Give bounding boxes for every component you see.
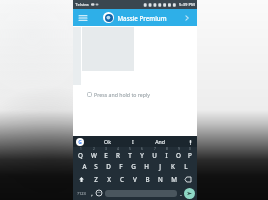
button[interactable]: X — [102, 173, 115, 186]
button[interactable]: H — [140, 160, 153, 173]
staticText: E — [104, 151, 108, 160]
staticText: H — [144, 162, 149, 171]
staticText: S — [94, 162, 98, 171]
staticText: G — [131, 162, 136, 171]
staticText: L — [184, 162, 188, 171]
button[interactable]: Space — [105, 190, 177, 197]
staticText: C — [120, 175, 124, 184]
button[interactable]: D — [102, 160, 114, 173]
staticText: 1 — [80, 147, 82, 151]
staticText: A — [82, 162, 87, 171]
staticText: N — [158, 175, 163, 184]
staticText: 0 — [189, 147, 191, 151]
button[interactable]: Z — [89, 173, 102, 186]
button[interactable]: 5 — [124, 147, 136, 160]
staticText: , — [91, 190, 93, 197]
staticText: ?123 — [77, 191, 86, 196]
button[interactable]: Emoji — [95, 189, 103, 197]
button[interactable]: N — [154, 173, 167, 186]
button[interactable]: 6 — [136, 147, 148, 160]
button[interactable]: Ok — [104, 138, 111, 145]
staticText: 5:39 PM — [179, 2, 195, 8]
button[interactable]: . — [177, 186, 184, 200]
button[interactable]: V — [128, 173, 141, 186]
staticText: Massie Premium — [117, 14, 167, 22]
staticText: Q — [78, 151, 83, 160]
staticText: F — [119, 162, 123, 171]
button[interactable]: Massie Premium — [103, 12, 167, 23]
staticText: G — [78, 139, 82, 146]
staticText: 8 — [166, 147, 168, 151]
button[interactable]: A — [78, 160, 90, 173]
button[interactable]: Send — [184, 188, 195, 199]
staticText: 3 — [105, 147, 107, 151]
staticText: Press and hold to reply — [94, 91, 150, 98]
staticText: W — [91, 151, 97, 160]
button[interactable]: C — [115, 173, 128, 186]
staticText: 4 — [117, 147, 119, 151]
staticText: . — [180, 190, 182, 197]
staticText: M — [171, 175, 177, 184]
button[interactable]: ?123 — [75, 186, 88, 200]
staticText: K — [171, 162, 175, 171]
button[interactable]: 2 — [87, 147, 100, 160]
button[interactable]: Backspace — [180, 173, 196, 186]
staticText: T — [128, 151, 132, 160]
button[interactable]: S — [90, 160, 102, 173]
button[interactable]: Press and hold to reply — [87, 91, 197, 98]
staticText: O — [176, 151, 181, 160]
staticText: 2 — [93, 147, 95, 151]
staticText: B — [145, 175, 150, 184]
button[interactable]: 4 — [112, 147, 124, 160]
button[interactable]: G — [127, 160, 140, 173]
button[interactable]: Shift — [74, 173, 89, 186]
button[interactable]: B — [141, 173, 154, 186]
staticText: Z — [94, 175, 98, 184]
button[interactable]: 7 — [148, 147, 160, 160]
button[interactable]: L — [179, 160, 192, 173]
staticText: I — [165, 151, 168, 160]
button[interactable]: K — [166, 160, 179, 173]
staticText: P — [188, 151, 192, 160]
button[interactable]: And — [155, 138, 165, 145]
button[interactable]: , — [88, 186, 95, 200]
staticText: U — [152, 151, 157, 160]
staticText: R — [116, 151, 120, 160]
button[interactable]: Menu — [77, 12, 89, 24]
staticText: 7 — [154, 147, 156, 151]
staticText: 9 — [178, 147, 180, 151]
staticText: Telstra — [75, 2, 89, 8]
staticText: V — [133, 175, 137, 184]
button[interactable]: Google — [76, 138, 84, 146]
staticText: Y — [140, 151, 144, 160]
button[interactable]: 0 — [184, 147, 196, 160]
button[interactable]: J — [153, 160, 166, 173]
button[interactable]: 9 — [172, 147, 184, 160]
button[interactable]: I — [132, 138, 134, 145]
staticText: J — [159, 162, 161, 171]
button[interactable]: Next — [181, 12, 193, 24]
button[interactable]: 1 — [74, 147, 87, 160]
button[interactable]: F — [114, 160, 127, 173]
button[interactable]: 3 — [100, 147, 112, 160]
button[interactable]: Voice input — [186, 138, 194, 146]
staticText: 5 — [129, 147, 131, 151]
button[interactable]: M — [167, 173, 180, 186]
staticText: D — [106, 162, 111, 171]
staticText: 6 — [141, 147, 143, 151]
button[interactable]: 8 — [160, 147, 172, 160]
staticText: X — [107, 175, 111, 184]
